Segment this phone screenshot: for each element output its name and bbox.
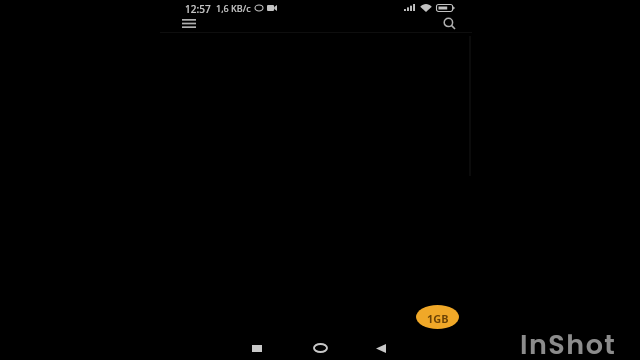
staticText: 12:57 [185, 2, 211, 13]
button[interactable]: Back [369, 337, 393, 359]
button[interactable]: Menu [172, 13, 206, 33]
button[interactable]: Recent apps [245, 337, 269, 359]
staticText: InShot [520, 326, 617, 360]
button[interactable]: Search [436, 12, 462, 34]
button[interactable]: 1GB [416, 305, 459, 329]
staticText: 1GB [427, 311, 449, 326]
button[interactable]: Home [308, 337, 332, 359]
staticText: 1,6 KB/c [216, 2, 251, 13]
